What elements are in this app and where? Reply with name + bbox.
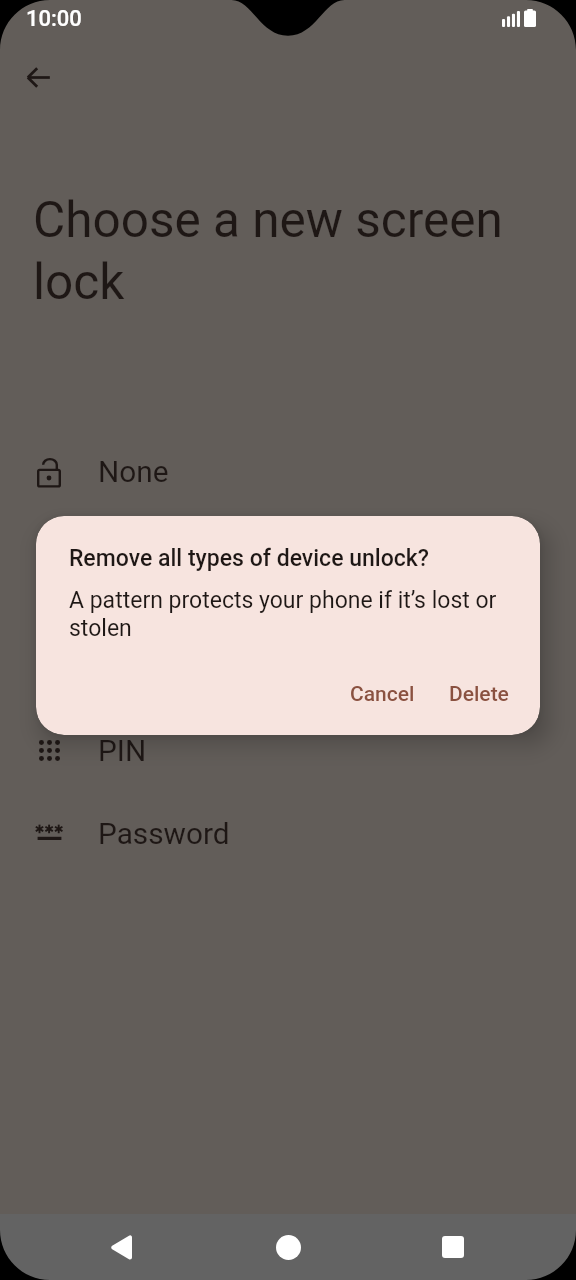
staticText: Swipe	[98, 537, 178, 572]
button[interactable]: None	[0, 430, 576, 513]
button[interactable]: PIN	[0, 709, 576, 792]
button[interactable]: Pattern	[0, 596, 576, 679]
staticText: 10:00	[26, 6, 82, 32]
staticText: Remove all types of device unlock?	[69, 545, 430, 572]
button[interactable]: Swipe	[0, 513, 576, 596]
button[interactable]: Recent apps	[423, 1217, 483, 1277]
staticText: Pattern	[98, 620, 195, 655]
staticText: Choose a new screen lock	[33, 188, 511, 312]
button[interactable]: Home	[258, 1217, 318, 1277]
staticText: Cancel	[350, 682, 415, 707]
button[interactable]: Navigate up	[12, 51, 64, 103]
staticText: Password	[98, 816, 230, 851]
staticText: Delete	[449, 682, 509, 707]
staticText: PIN	[98, 733, 147, 768]
button[interactable]: Password	[0, 792, 576, 875]
staticText: A pattern protects your phone if it’s lo…	[69, 586, 531, 642]
button[interactable]: Cancel	[338, 672, 427, 717]
staticText: None	[98, 454, 169, 489]
button[interactable]: Delete	[437, 672, 521, 717]
button[interactable]: Back	[91, 1217, 151, 1277]
